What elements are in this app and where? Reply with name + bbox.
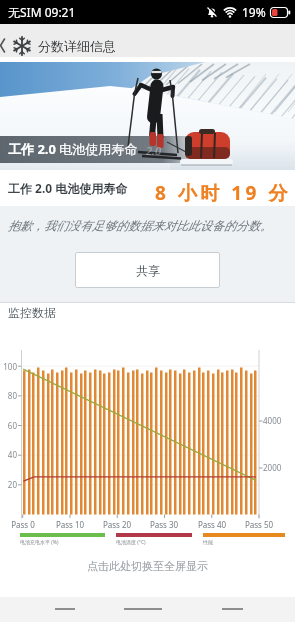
staticText: 2000: [263, 462, 282, 473]
staticText: 8 小时 19 分: [155, 180, 291, 206]
staticText: 40: [0, 449, 17, 460]
staticText: 工作 2.0 电池使用寿命: [8, 140, 138, 158]
staticText: 抱歉，我们没有足够的数据来对比此设备的分数。: [8, 218, 272, 233]
staticText: Pass 20: [96, 519, 138, 530]
staticText: 4000: [263, 415, 282, 426]
button[interactable]: 分数详细信息: [0, 24, 295, 57]
button[interactable]: 共享: [75, 252, 220, 288]
staticText: 电池充电水平 (%): [20, 539, 59, 546]
staticText: 监控数据: [8, 305, 56, 320]
staticText: 19%: [242, 4, 266, 20]
staticText: Pass 40: [191, 519, 233, 530]
staticText: 80: [0, 390, 17, 401]
staticText: 共享: [136, 263, 160, 278]
staticText: 无SIM 09:21: [8, 4, 76, 20]
staticText: Pass 30: [143, 519, 185, 530]
staticText: 60: [0, 420, 17, 431]
staticText: 100: [0, 361, 17, 372]
staticText: 性能: [203, 539, 213, 545]
staticText: Pass 50: [238, 519, 280, 530]
staticText: 20: [0, 479, 17, 490]
staticText: 电池温度 (°C): [116, 539, 146, 546]
staticText: 分数详细信息: [38, 38, 116, 54]
button[interactable]: 点击此处切换至全屏显示: [87, 559, 208, 573]
staticText: 工作 2.0 电池使用寿命: [8, 180, 128, 196]
staticText: Pass 0: [2, 519, 44, 530]
staticText: Pass 10: [49, 519, 91, 530]
staticText: 2.0: [146, 143, 161, 158]
